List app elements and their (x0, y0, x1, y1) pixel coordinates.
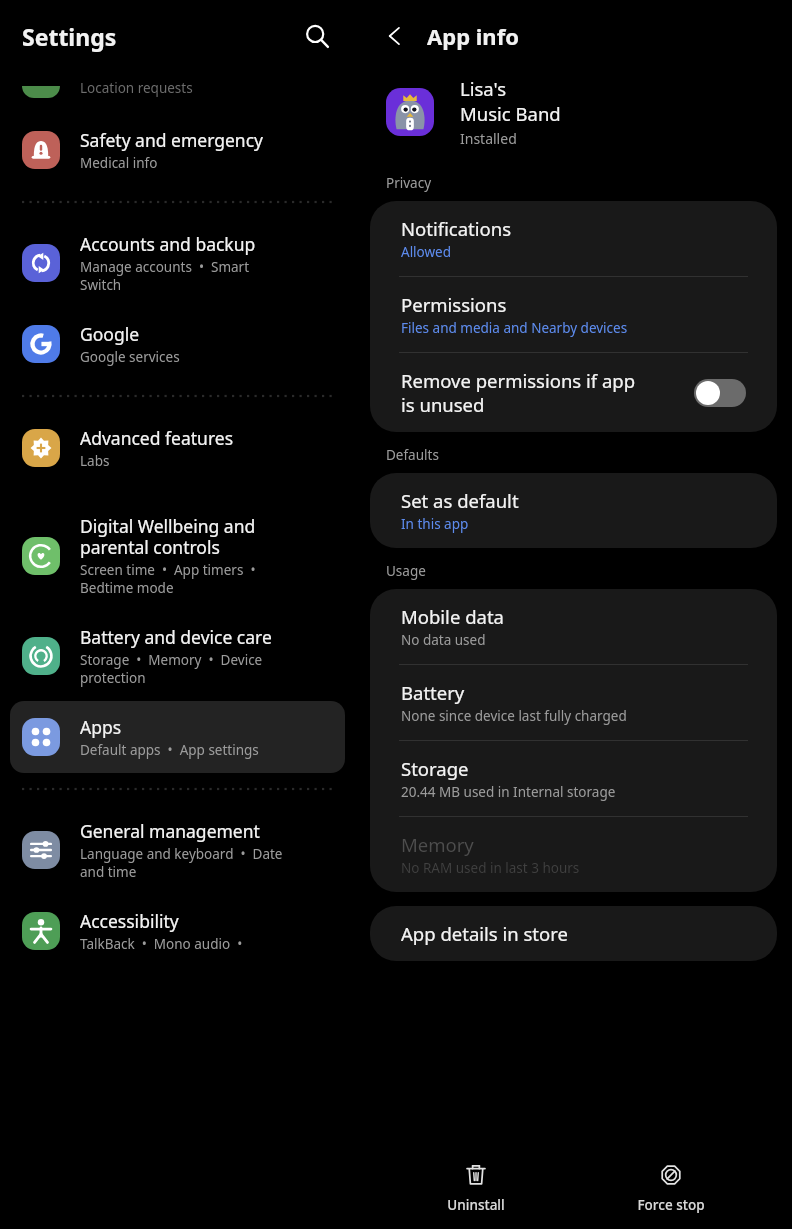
staticText: Set as default (401, 488, 519, 513)
button[interactable]: Uninstall (401, 1155, 551, 1220)
button[interactable]: Permissions (370, 277, 777, 352)
staticText: No data used (401, 631, 486, 649)
button[interactable]: Accounts and backup (0, 218, 355, 308)
button[interactable]: Safety and emergency (0, 114, 355, 186)
staticText: Default apps • App settings (80, 741, 259, 759)
button[interactable]: Lisa's Music Band (355, 72, 792, 160)
button[interactable]: Google (0, 308, 355, 380)
staticText: Memory (401, 832, 474, 857)
staticText: Installed (460, 129, 517, 148)
button[interactable]: Battery (370, 665, 777, 740)
button[interactable]: Advanced features (0, 412, 355, 484)
staticText: Defaults (386, 446, 439, 464)
staticText: Settings (22, 21, 297, 52)
staticText: Uninstall (447, 1196, 505, 1214)
button[interactable]: Memory (370, 817, 777, 892)
button[interactable]: Accessibility (0, 895, 355, 967)
other: Uninstall (462, 1161, 490, 1189)
staticText: None since device last fully charged (401, 707, 627, 725)
staticText: TalkBack • Mono audio • (80, 935, 243, 953)
staticText: Manage accounts • Smart Switch (80, 258, 250, 294)
staticText: Files and media and Nearby devices (401, 319, 628, 337)
staticText: Screen time • App timers • Bedtime mode (80, 561, 256, 597)
staticText: App details in store (401, 921, 568, 946)
button[interactable]: Storage (370, 741, 777, 816)
staticText: Apps (80, 715, 122, 739)
button[interactable]: General management (0, 805, 355, 895)
button[interactable]: Digital Wellbeing and parental controls (0, 500, 355, 611)
staticText: Location requests (80, 79, 193, 97)
button[interactable]: Back (377, 18, 413, 54)
staticText: Advanced features (80, 426, 234, 450)
staticText: Notifications (401, 216, 512, 241)
button[interactable]: Mobile data (370, 589, 777, 664)
button[interactable]: Remove permissions if app is unused (370, 353, 777, 432)
staticText: Language and keyboard • Date and time (80, 845, 283, 881)
staticText: Safety and emergency (80, 128, 263, 152)
staticText: Allowed (401, 243, 452, 261)
staticText: Storage (401, 756, 469, 781)
staticText: Google (80, 322, 140, 346)
staticText: Digital Wellbeing and parental controls (80, 514, 256, 559)
other: Force stop (657, 1161, 685, 1189)
staticText: Medical info (80, 154, 158, 172)
button[interactable]: App details in store (370, 906, 777, 961)
button[interactable]: Location requests (0, 72, 355, 98)
staticText: Permissions (401, 292, 507, 317)
staticText: Battery and device care (80, 625, 272, 649)
staticText: Force stop (637, 1196, 705, 1214)
staticText: Battery (401, 680, 465, 705)
staticText: 20.44 MB used in Internal storage (401, 783, 616, 801)
staticText: Usage (386, 562, 426, 580)
staticText: Remove permissions if app is unused (401, 368, 636, 417)
button[interactable]: Search (297, 16, 337, 56)
staticText: General management (80, 819, 260, 843)
button[interactable]: Set as default (370, 473, 777, 548)
button[interactable]: Notifications (370, 201, 777, 276)
staticText: In this app (401, 515, 469, 533)
button[interactable]: Force stop (596, 1155, 746, 1220)
staticText: Mobile data (401, 604, 504, 629)
button[interactable]: Remove permissions if app is unused togg… (694, 379, 746, 407)
staticText: Lisa's Music Band (460, 76, 561, 126)
button[interactable]: Battery and device care (0, 611, 355, 701)
staticText: Labs (80, 452, 110, 470)
staticText: Accounts and backup (80, 232, 256, 256)
staticText: App info (427, 21, 519, 51)
staticText: Storage • Memory • Device protection (80, 651, 263, 687)
staticText: No RAM used in last 3 hours (401, 859, 580, 877)
staticText: Accessibility (80, 909, 179, 933)
button[interactable]: Apps (10, 701, 345, 773)
staticText: Google services (80, 348, 180, 366)
staticText: Privacy (386, 174, 432, 192)
